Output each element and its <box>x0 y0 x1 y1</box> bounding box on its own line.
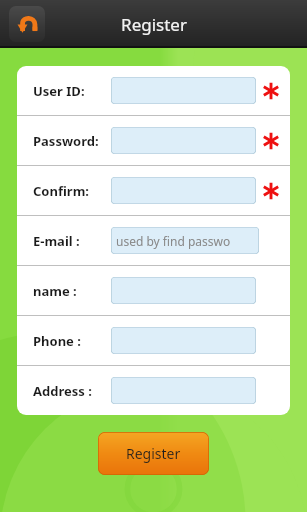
button[interactable]: Password: <box>17 116 290 165</box>
staticText: User ID: <box>33 82 85 100</box>
staticText: E-mail : <box>33 232 80 250</box>
button[interactable]: Back <box>9 6 45 42</box>
button[interactable]: Register <box>98 432 209 475</box>
staticText: name : <box>33 282 77 300</box>
button[interactable]: Phone : <box>17 316 290 365</box>
staticText: Phone : <box>33 332 81 350</box>
button[interactable]: E-mail : <box>17 216 290 265</box>
staticText: used by find passwo <box>116 233 231 249</box>
staticText: Password: <box>33 132 99 150</box>
button[interactable]: User ID: <box>17 66 290 115</box>
staticText: Register <box>126 444 181 463</box>
button[interactable]: Address : <box>17 366 290 415</box>
button[interactable]: Confirm: <box>17 166 290 215</box>
staticText: Address : <box>33 382 92 400</box>
button[interactable]: name : <box>17 266 290 315</box>
staticText: Register <box>121 13 187 36</box>
staticText: Confirm: <box>33 182 89 200</box>
